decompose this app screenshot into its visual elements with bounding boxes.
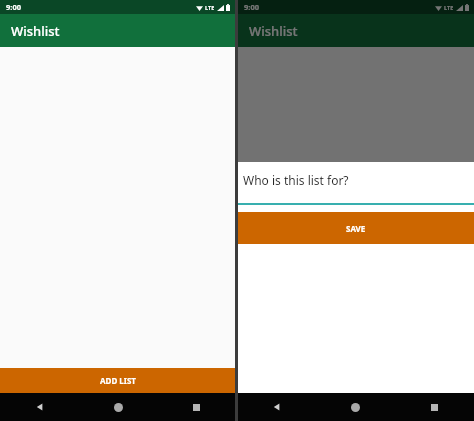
staticText: LTE (205, 4, 215, 11)
staticText: LTE (444, 4, 454, 11)
button[interactable]: Back (238, 393, 316, 421)
staticText: Who is this list for? (243, 172, 349, 188)
button[interactable]: Wishlist (238, 14, 474, 47)
button[interactable]: Back (0, 393, 79, 421)
button[interactable]: ADD LIST (0, 368, 235, 393)
button[interactable]: Recents (157, 393, 235, 421)
button[interactable]: Recents (395, 393, 474, 421)
staticText: 9:00 (6, 2, 21, 12)
staticText: ADD LIST (100, 375, 136, 386)
button[interactable]: SAVE (238, 212, 474, 244)
staticText: Wishlist (249, 22, 298, 40)
button[interactable]: Home (316, 393, 395, 421)
staticText: Wishlist (11, 22, 60, 40)
staticText: 9:00 (244, 2, 259, 12)
button[interactable]: Back (238, 393, 316, 421)
button[interactable]: Who is this list for? (238, 162, 474, 203)
button[interactable]: Recents (395, 393, 474, 421)
button[interactable]: Wishlist (0, 14, 235, 47)
button[interactable]: Home (316, 393, 395, 421)
button[interactable]: Home (79, 393, 157, 421)
staticText: SAVE (346, 223, 366, 234)
